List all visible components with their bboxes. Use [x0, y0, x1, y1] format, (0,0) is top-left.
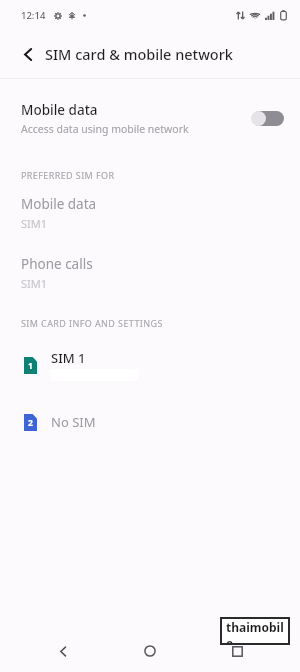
staticText: 1 [28, 360, 33, 372]
staticText: 12:14 [21, 9, 46, 22]
button[interactable]: Home [135, 636, 165, 666]
button[interactable]: 1 [0, 345, 300, 385]
button[interactable]: Recent apps [222, 636, 252, 666]
staticText: 2 [28, 417, 33, 429]
staticText: SIM 1 [51, 349, 86, 367]
staticText: SIM1 [21, 216, 48, 231]
button[interactable]: 2 [0, 407, 300, 437]
button[interactable]: Mobile data toggle [251, 106, 285, 130]
staticText: thaimobile [226, 619, 284, 643]
staticText: SIM1 [21, 276, 48, 291]
button[interactable]: Phone calls [0, 255, 300, 291]
staticText: Mobile data [21, 101, 98, 119]
staticText: Mobile data [21, 195, 97, 213]
staticText: SIM CARD INFO AND SETTINGS [21, 317, 163, 329]
staticText: Phone calls [21, 255, 93, 273]
staticText: Access data using mobile network [21, 122, 189, 136]
button[interactable]: Back [12, 38, 44, 70]
staticText: PREFERRED SIM FOR [21, 169, 115, 181]
staticText: SIM card & mobile network [45, 44, 233, 64]
button[interactable]: Mobile data [0, 95, 300, 141]
staticText: No SIM [51, 413, 96, 431]
button[interactable]: Back [48, 636, 78, 666]
button[interactable]: Mobile data [0, 195, 300, 231]
